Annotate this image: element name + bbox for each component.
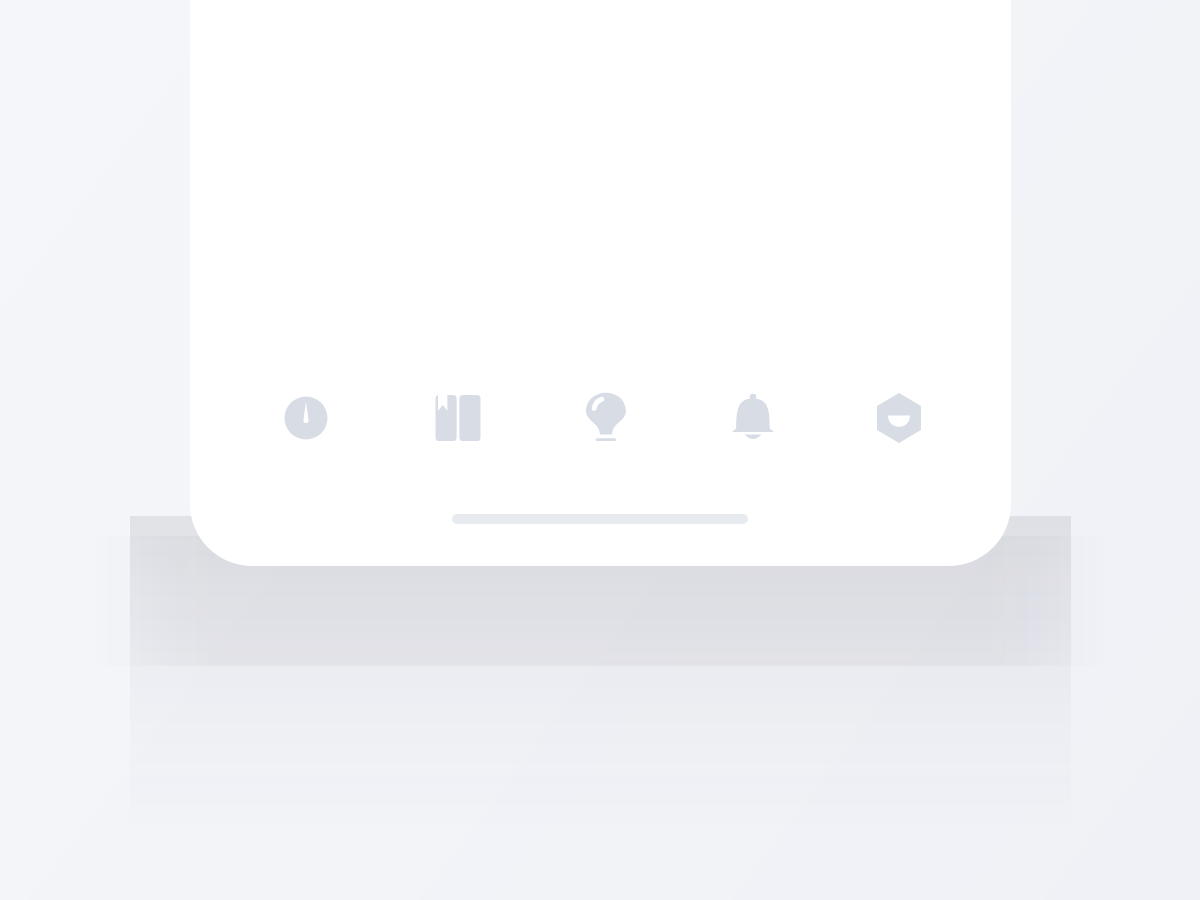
- button[interactable]: Notifications: [721, 386, 785, 450]
- button[interactable]: Library: [426, 386, 490, 450]
- button[interactable]: Ideas: [574, 386, 638, 450]
- button[interactable]: Dashboard: [274, 386, 338, 450]
- button[interactable]: Profile: [867, 386, 931, 450]
